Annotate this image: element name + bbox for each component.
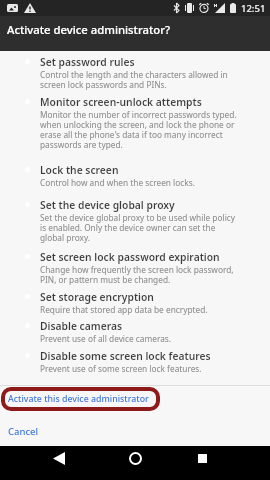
- button[interactable]: [125, 448, 145, 468]
- staticText: Monitor screen-unlock attempts: [40, 95, 202, 109]
- staticText: Control the length and the characters al…: [40, 69, 228, 90]
- staticText: Prevent use of all device cameras.: [40, 333, 172, 344]
- staticText: Activate device administrator?: [7, 22, 170, 37]
- staticText: Set the device global proxy: [40, 198, 175, 212]
- button[interactable]: Cancel: [0, 423, 39, 440]
- staticText: Lock the screen: [40, 163, 119, 177]
- staticText: Require that stored app data be encrypte…: [40, 304, 208, 315]
- staticText: Prevent use of some screen lock features…: [40, 363, 202, 374]
- staticText: Monitor the number of incorrect password…: [40, 109, 237, 150]
- staticText: Change how frequently the screen lock pa…: [40, 264, 234, 285]
- staticText: Set password rules: [40, 55, 135, 69]
- staticText: Disable some screen lock features: [40, 349, 211, 363]
- staticText: Disable cameras: [40, 319, 123, 333]
- staticText: Activate this device administrator: [8, 393, 149, 405]
- staticText: Cancel: [8, 425, 39, 438]
- staticText: Set the device global proxy to be used w…: [40, 212, 235, 243]
- staticText: Set screen lock password expiration: [40, 250, 220, 264]
- staticText: Set storage encryption: [40, 290, 154, 304]
- button[interactable]: Activate this device administrator: [1, 387, 160, 411]
- staticText: Control how and when the screen locks.: [40, 177, 195, 188]
- button[interactable]: [49, 448, 69, 468]
- button[interactable]: [192, 448, 212, 468]
- staticText: 12:51: [241, 2, 266, 15]
